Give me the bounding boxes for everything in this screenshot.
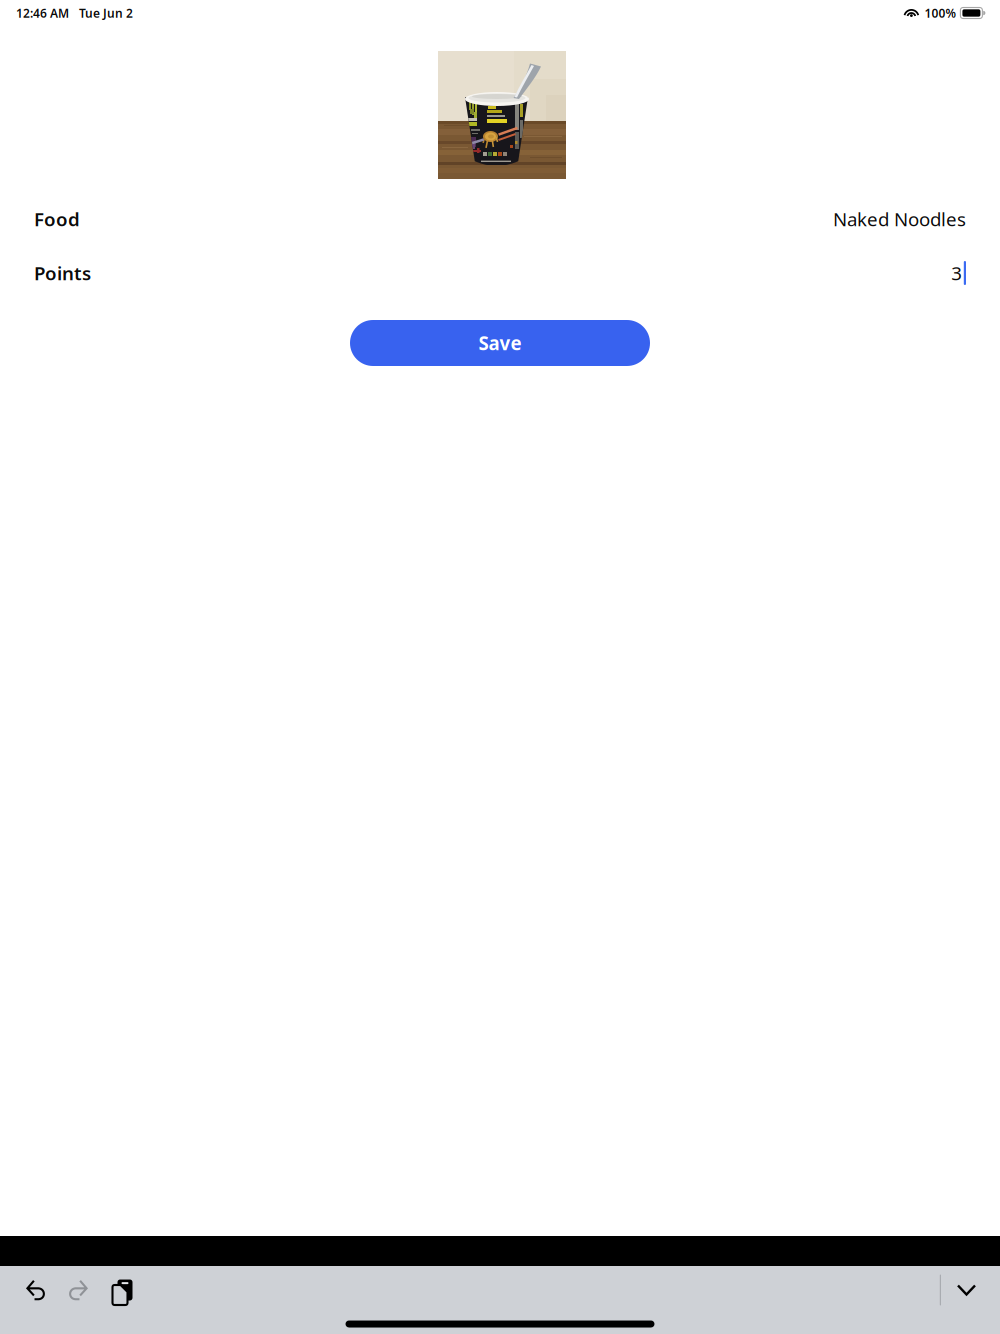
button[interactable]: Hide keyboard <box>941 1268 992 1312</box>
staticText: 12:46 AM <box>16 5 69 21</box>
staticText: Tue Jun 2 <box>79 5 133 21</box>
button[interactable]: Food <box>34 192 966 246</box>
staticText: 3 <box>951 261 962 285</box>
button[interactable]: Save <box>350 320 650 366</box>
staticText: Points <box>34 261 91 285</box>
staticText: 100% <box>924 5 956 21</box>
staticText: Save <box>478 331 521 355</box>
button[interactable]: Points <box>34 246 966 300</box>
button[interactable]: Undo <box>15 1268 57 1312</box>
staticText: Food <box>34 207 80 231</box>
button[interactable]: Paste <box>99 1268 141 1312</box>
button[interactable]: Redo <box>57 1268 99 1312</box>
staticText: Naked Noodles <box>833 207 966 231</box>
